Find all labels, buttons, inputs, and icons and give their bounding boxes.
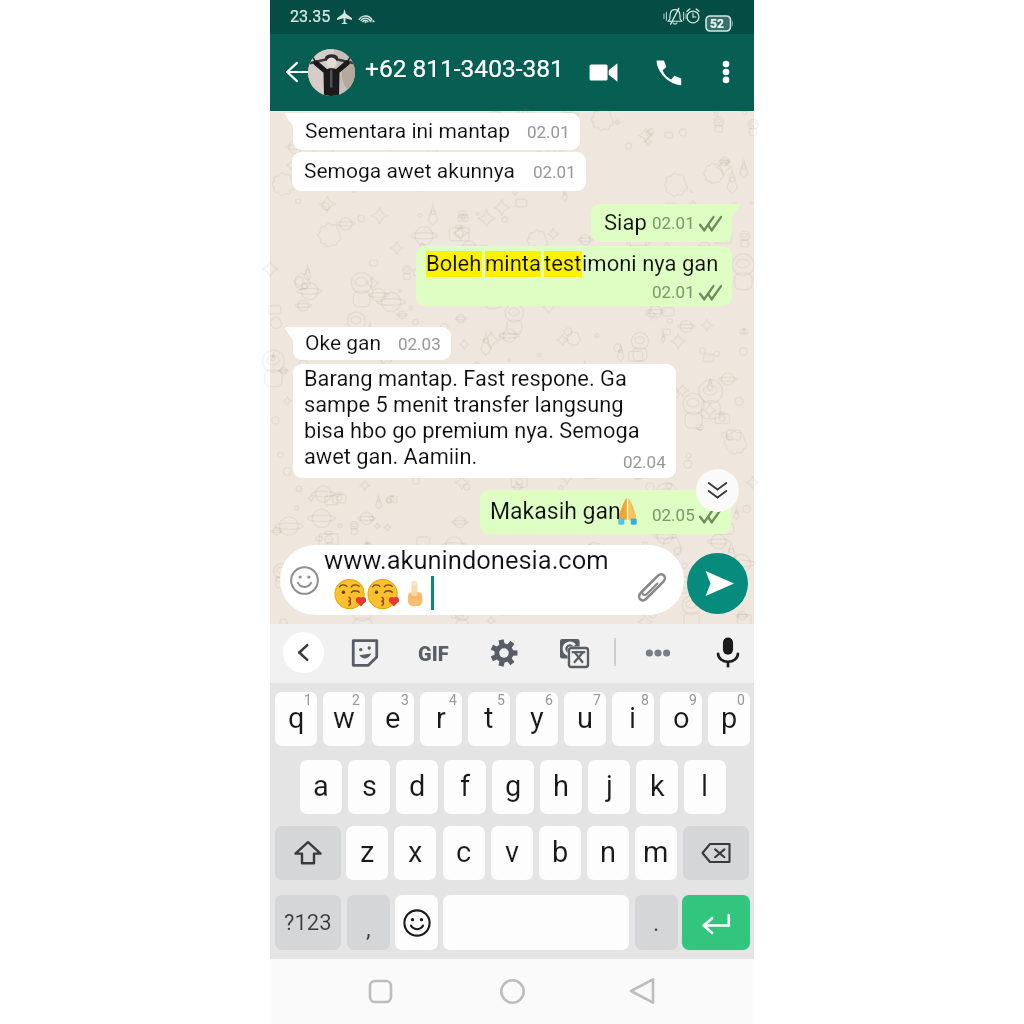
button[interactable]: s <box>348 760 390 814</box>
staticText: bisa hbo go premium nya. Semoga <box>304 418 640 444</box>
button[interactable]: Back <box>277 50 321 94</box>
staticText: m <box>643 835 669 869</box>
button[interactable]: GIF <box>415 642 451 665</box>
staticText: i <box>629 701 637 735</box>
staticText: e <box>385 701 401 735</box>
staticText: test <box>544 251 582 277</box>
button[interactable]: l <box>684 760 726 814</box>
button[interactable]: Emoji <box>280 545 684 615</box>
button[interactable]: Boleh <box>416 246 732 306</box>
staticText: d <box>409 769 426 803</box>
button[interactable]: v <box>491 826 533 880</box>
button[interactable]: u <box>564 692 606 746</box>
button[interactable]: Stickers <box>351 639 379 667</box>
button[interactable]: c <box>443 826 485 880</box>
button[interactable]: More options <box>705 51 747 93</box>
button[interactable]: Home <box>490 969 534 1013</box>
staticText: z <box>360 835 375 869</box>
staticText: a <box>313 769 329 803</box>
button[interactable]: k <box>636 760 678 814</box>
button[interactable]: Translate <box>560 639 588 667</box>
button[interactable]: r <box>420 692 462 746</box>
button[interactable]: m <box>635 826 677 880</box>
button[interactable]: Makasih gan <box>480 490 731 534</box>
staticText: imoni nya gan <box>582 251 719 277</box>
button[interactable]: ?123 <box>275 895 341 950</box>
button[interactable]: d <box>396 760 438 814</box>
button[interactable]: Voice call <box>646 50 690 94</box>
button[interactable]: Barang mantap. Fast respone. Ga <box>293 364 676 478</box>
staticText: 1 <box>304 692 312 708</box>
button[interactable]: x <box>394 826 436 880</box>
staticText: b <box>552 835 569 869</box>
button[interactable]: Back <box>620 969 664 1013</box>
button[interactable]: Semoga awet akunnya <box>292 152 586 191</box>
button[interactable]: Key <box>683 826 749 880</box>
staticText: h <box>553 769 569 803</box>
staticText: u <box>577 701 593 735</box>
staticText: 9 <box>689 692 697 708</box>
button[interactable]: a <box>300 760 342 814</box>
staticText: 52 <box>710 17 724 31</box>
button[interactable]: Key <box>275 826 341 880</box>
staticText: w <box>333 701 355 735</box>
staticText: 02.01 <box>652 282 695 302</box>
staticText: 02.03 <box>398 334 441 354</box>
button[interactable]: Siap <box>591 204 732 242</box>
staticText: n <box>600 835 617 869</box>
button[interactable]: n <box>587 826 629 880</box>
button[interactable]: y <box>516 692 558 746</box>
staticText: v <box>505 835 520 869</box>
button[interactable]: More <box>646 649 670 657</box>
button[interactable]: p <box>708 692 750 746</box>
button[interactable]: o <box>660 692 702 746</box>
button[interactable]: Emoji <box>290 566 319 595</box>
button[interactable]: Sementara ini mantap <box>293 113 580 150</box>
staticText: , <box>366 915 371 943</box>
staticText: 02.01 <box>527 122 570 142</box>
staticText: Barang mantap. Fast respone. Ga <box>304 366 627 392</box>
button[interactable]: i <box>612 692 654 746</box>
staticText: 02.01 <box>652 213 695 233</box>
button[interactable]: t <box>468 692 510 746</box>
staticText: 7 <box>593 692 601 708</box>
button[interactable]: b <box>539 826 581 880</box>
button[interactable]: w <box>323 692 365 746</box>
button[interactable]: Contact photo <box>308 49 355 96</box>
button[interactable]: +62 811-3403-381 <box>365 54 564 83</box>
staticText: 8 <box>641 692 649 708</box>
staticText: Makasih gan <box>490 498 621 525</box>
staticText: 2 <box>352 692 360 708</box>
staticText: 02.04 <box>623 452 666 472</box>
button[interactable]: Video call <box>581 50 625 94</box>
button[interactable]: Hide keyboard <box>283 632 324 673</box>
button[interactable]: j <box>588 760 630 814</box>
button[interactable]: Settings <box>490 639 518 667</box>
button[interactable]: g <box>492 760 534 814</box>
staticText: Boleh <box>426 251 482 277</box>
button[interactable]: Enter <box>682 895 750 950</box>
staticText: 0 <box>737 692 745 708</box>
button[interactable]: Attach <box>634 572 664 602</box>
staticText: 23.35 <box>290 7 331 26</box>
button[interactable]: Send <box>687 553 748 614</box>
button[interactable]: Voice input <box>717 637 739 668</box>
button[interactable]: f <box>444 760 486 814</box>
staticText: Semoga awet akunnya <box>304 159 515 184</box>
button[interactable]: e <box>372 692 414 746</box>
button[interactable]: q <box>275 692 317 746</box>
button[interactable]: , <box>347 895 390 950</box>
staticText: 6 <box>545 692 553 708</box>
staticText: o <box>673 701 690 735</box>
button[interactable]: h <box>540 760 582 814</box>
button[interactable]: Scroll to bottom <box>696 469 739 512</box>
button[interactable]: Recents <box>358 969 402 1013</box>
staticText: Sementara ini mantap <box>305 119 510 144</box>
button[interactable]: . <box>635 895 678 950</box>
staticText: 5 <box>497 692 505 708</box>
button[interactable]: Oke gan <box>293 327 451 360</box>
button[interactable]: z <box>346 826 388 880</box>
staticText: r <box>436 701 446 735</box>
button[interactable] <box>395 895 438 950</box>
